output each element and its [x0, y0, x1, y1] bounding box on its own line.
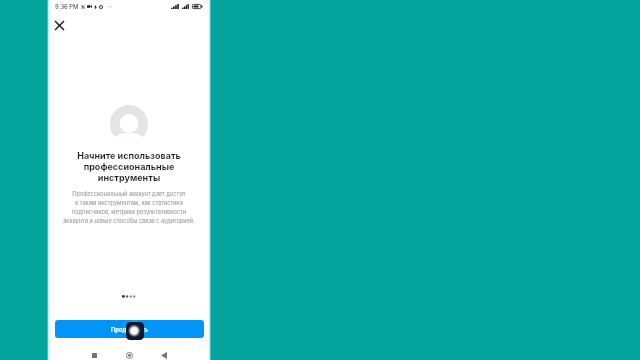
button[interactable]: Close — [49, 15, 70, 36]
staticText: 9:36 PM — [55, 3, 79, 10]
button[interactable]: Back — [158, 349, 170, 360]
staticText: Начните использовать профессиональные ин… — [47, 150, 211, 183]
button[interactable]: Recents — [88, 349, 100, 360]
staticText: Продолжить — [111, 326, 148, 333]
staticText: Профессиональный аккаунт дает доступ к т… — [47, 191, 211, 224]
button[interactable]: Home — [123, 349, 135, 360]
button[interactable]: Продолжить — [55, 320, 204, 338]
